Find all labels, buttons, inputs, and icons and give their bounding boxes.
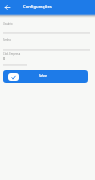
staticText: Senha <box>3 38 11 42</box>
staticText: 0 <box>3 56 6 61</box>
staticText: Salvar <box>39 74 47 78</box>
staticText: Cód. Empresa <box>3 52 21 56</box>
staticText: Configurações <box>23 4 52 10</box>
button[interactable]: Back <box>1 1 14 14</box>
staticText: Usuário <box>3 22 13 26</box>
button[interactable]: Salvar <box>3 70 88 83</box>
